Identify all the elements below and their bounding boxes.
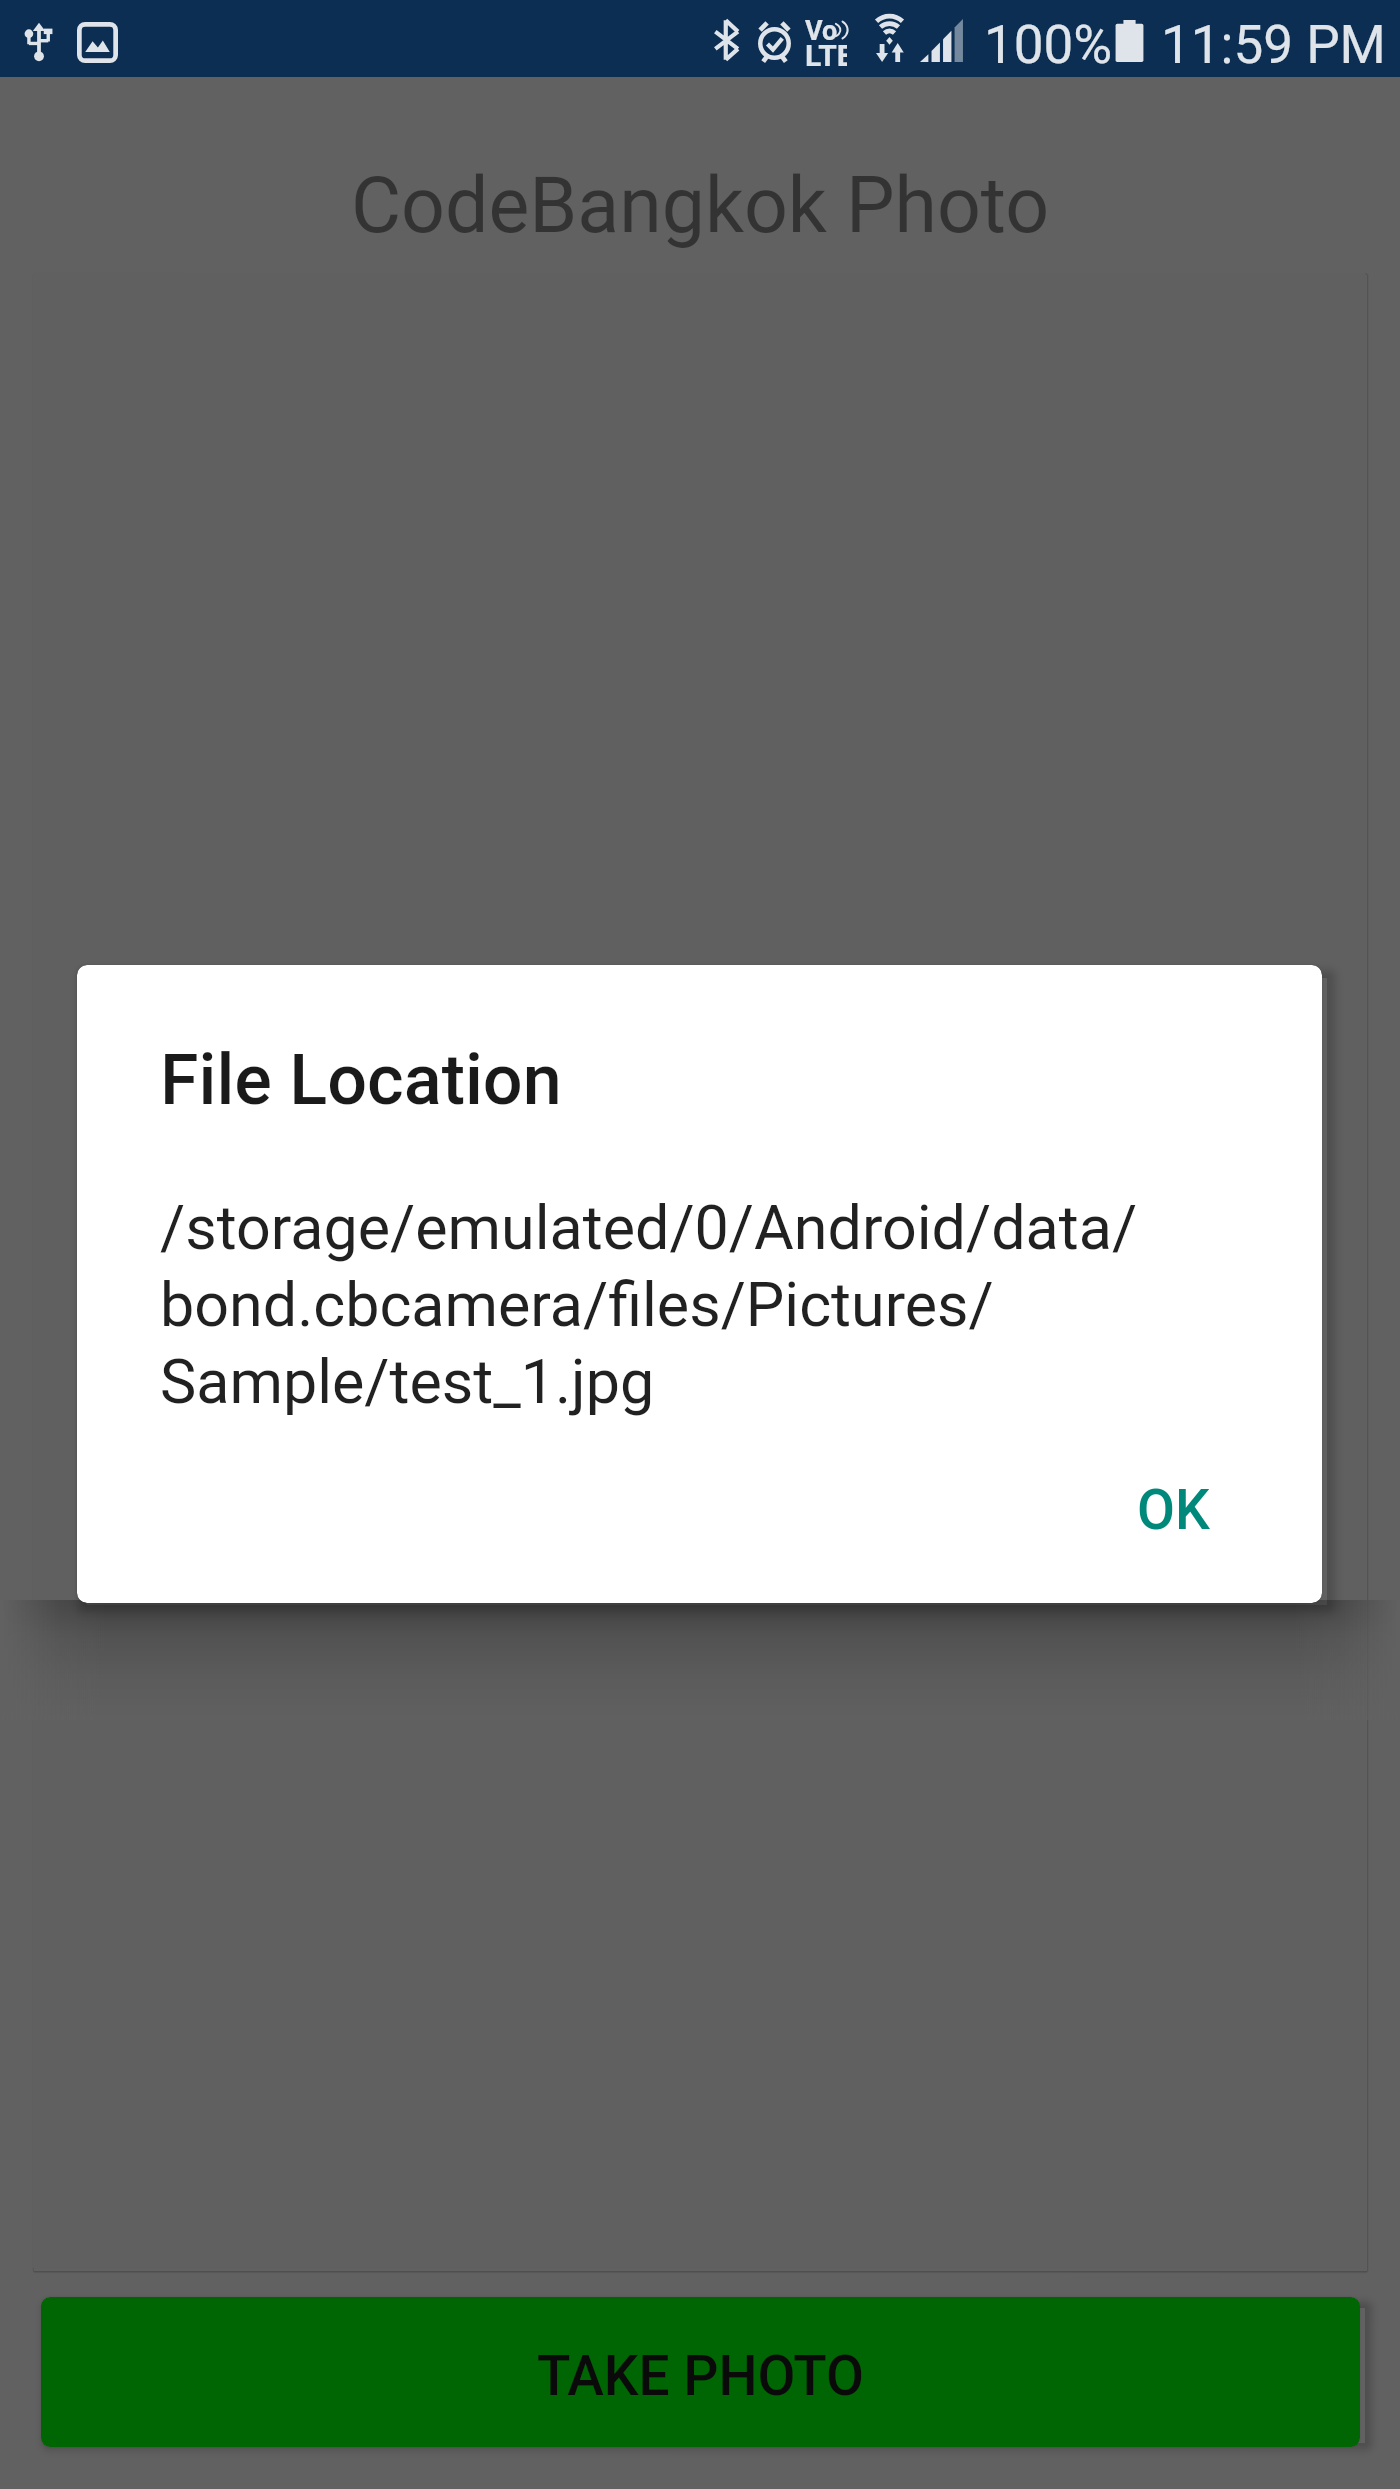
staticText: Vo xyxy=(805,15,847,47)
button[interactable]: TAKE PHOTO xyxy=(41,2297,1360,2447)
staticText: OK xyxy=(1137,1478,1210,1542)
staticText: File Location xyxy=(160,1039,562,1121)
staticText: CodeBangkok Photo xyxy=(351,161,1050,251)
staticText: TAKE PHOTO xyxy=(537,2344,864,2408)
staticText: /storage/emulated/0/Android/data/bond.cb… xyxy=(160,1192,1200,1418)
staticText: 100% xyxy=(984,14,1113,76)
staticText: 11:59 PM xyxy=(1161,14,1386,76)
button[interactable]: OK xyxy=(1098,1455,1248,1565)
staticText: LTE xyxy=(805,38,847,73)
